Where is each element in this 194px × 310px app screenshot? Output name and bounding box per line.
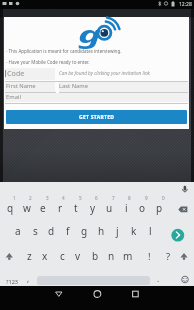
staticText: d (48, 224, 55, 238)
button[interactable]: j (107, 223, 127, 239)
button[interactable]: b (85, 248, 105, 264)
staticText: i (125, 201, 128, 215)
staticText: 5 (79, 195, 82, 201)
staticText: k (131, 224, 137, 238)
staticText: r (58, 201, 63, 215)
staticText: g (81, 224, 88, 238)
staticText: 1 (13, 195, 16, 201)
button[interactable] (125, 286, 147, 304)
staticText: m (123, 249, 133, 263)
button[interactable]: GET STARTED (6, 110, 187, 124)
staticText: x (42, 249, 48, 263)
staticText: First Name (6, 82, 36, 90)
staticText: b (92, 249, 99, 263)
staticText: s (33, 224, 38, 238)
button[interactable]: 6 (86, 190, 106, 206)
button[interactable]: 0 (153, 190, 173, 206)
staticText: 12:28 (179, 1, 192, 8)
button[interactable]: y (83, 200, 103, 216)
button[interactable]: 3 (37, 190, 57, 206)
button[interactable]: z (19, 248, 39, 264)
staticText: , (27, 273, 30, 284)
button[interactable]: e (33, 200, 53, 216)
staticText: Can be found by clicking your invitation… (59, 70, 150, 76)
staticText: - Have your Mobile Code ready to enter. (6, 59, 90, 65)
staticText: z (27, 249, 32, 263)
button[interactable]: c (52, 248, 72, 264)
button[interactable]: 7 (103, 190, 123, 206)
staticText: 6 (95, 195, 98, 201)
button[interactable]: 1 (4, 190, 24, 206)
button[interactable]: h (91, 223, 111, 239)
button[interactable]: q (0, 200, 20, 216)
button[interactable]: i (116, 200, 136, 216)
button[interactable]: 5 (70, 190, 90, 206)
staticText: ! (148, 250, 151, 263)
staticText: e (40, 201, 46, 215)
staticText: . (157, 273, 160, 284)
button[interactable]: l (140, 223, 160, 239)
button[interactable] (5, 93, 189, 102)
staticText: j (116, 224, 119, 238)
button[interactable]: t (66, 200, 86, 216)
button[interactable]: r (50, 200, 70, 216)
staticText: - This Application is meant for candidat… (6, 48, 122, 54)
staticText: h (98, 224, 105, 238)
button[interactable]: ?123 (2, 274, 22, 290)
button[interactable]: n (101, 248, 121, 264)
staticText: 8 (128, 195, 131, 201)
staticText: a (15, 224, 21, 238)
button[interactable] (87, 286, 109, 304)
button[interactable] (48, 286, 70, 304)
button[interactable]: w (17, 200, 37, 216)
button[interactable]: m (118, 248, 138, 264)
button[interactable]: a (8, 223, 28, 239)
staticText: w (23, 201, 31, 215)
staticText: c (60, 249, 65, 263)
button[interactable]: p (149, 200, 169, 216)
button[interactable]: ? (158, 248, 178, 264)
button[interactable]: 9 (136, 190, 156, 206)
button[interactable]: d (41, 223, 61, 239)
staticText: 4 (62, 195, 65, 201)
button[interactable]: o (132, 200, 152, 216)
staticText: 0 (162, 195, 165, 201)
button[interactable]: 2 (20, 190, 40, 206)
button[interactable] (5, 68, 55, 80)
staticText: ? (166, 250, 171, 263)
staticText: q (7, 201, 14, 215)
staticText: 7 (112, 195, 115, 201)
button[interactable]: f (58, 223, 78, 239)
button[interactable]: s (25, 223, 45, 239)
button[interactable]: ! (139, 248, 159, 264)
staticText: ?123 (6, 278, 19, 286)
button[interactable]: u (99, 200, 119, 216)
staticText: n (108, 249, 115, 263)
staticText: t (74, 201, 78, 215)
button[interactable]: , (18, 270, 38, 286)
staticText: g (78, 18, 102, 49)
staticText: o (139, 201, 146, 215)
staticText: v (75, 249, 81, 263)
staticText: y (90, 201, 96, 215)
button[interactable]: g (74, 223, 94, 239)
button[interactable]: 8 (119, 190, 139, 206)
button[interactable]: v (68, 248, 88, 264)
staticText: GET STARTED (79, 114, 115, 121)
button[interactable]: x (35, 248, 55, 264)
button[interactable]: k (124, 223, 144, 239)
button[interactable]: 4 (53, 190, 73, 206)
button[interactable] (5, 82, 55, 92)
staticText: 9 (145, 195, 148, 201)
staticText: 2 (29, 195, 32, 201)
button[interactable]: . (148, 270, 168, 286)
staticText: 3 (46, 195, 49, 201)
staticText: Last Name (59, 82, 89, 90)
staticText: u (106, 201, 113, 215)
staticText: l (149, 224, 152, 238)
staticText: f (66, 224, 70, 238)
staticText: Email (6, 93, 21, 101)
button[interactable] (59, 82, 189, 92)
staticText: p (156, 201, 163, 215)
